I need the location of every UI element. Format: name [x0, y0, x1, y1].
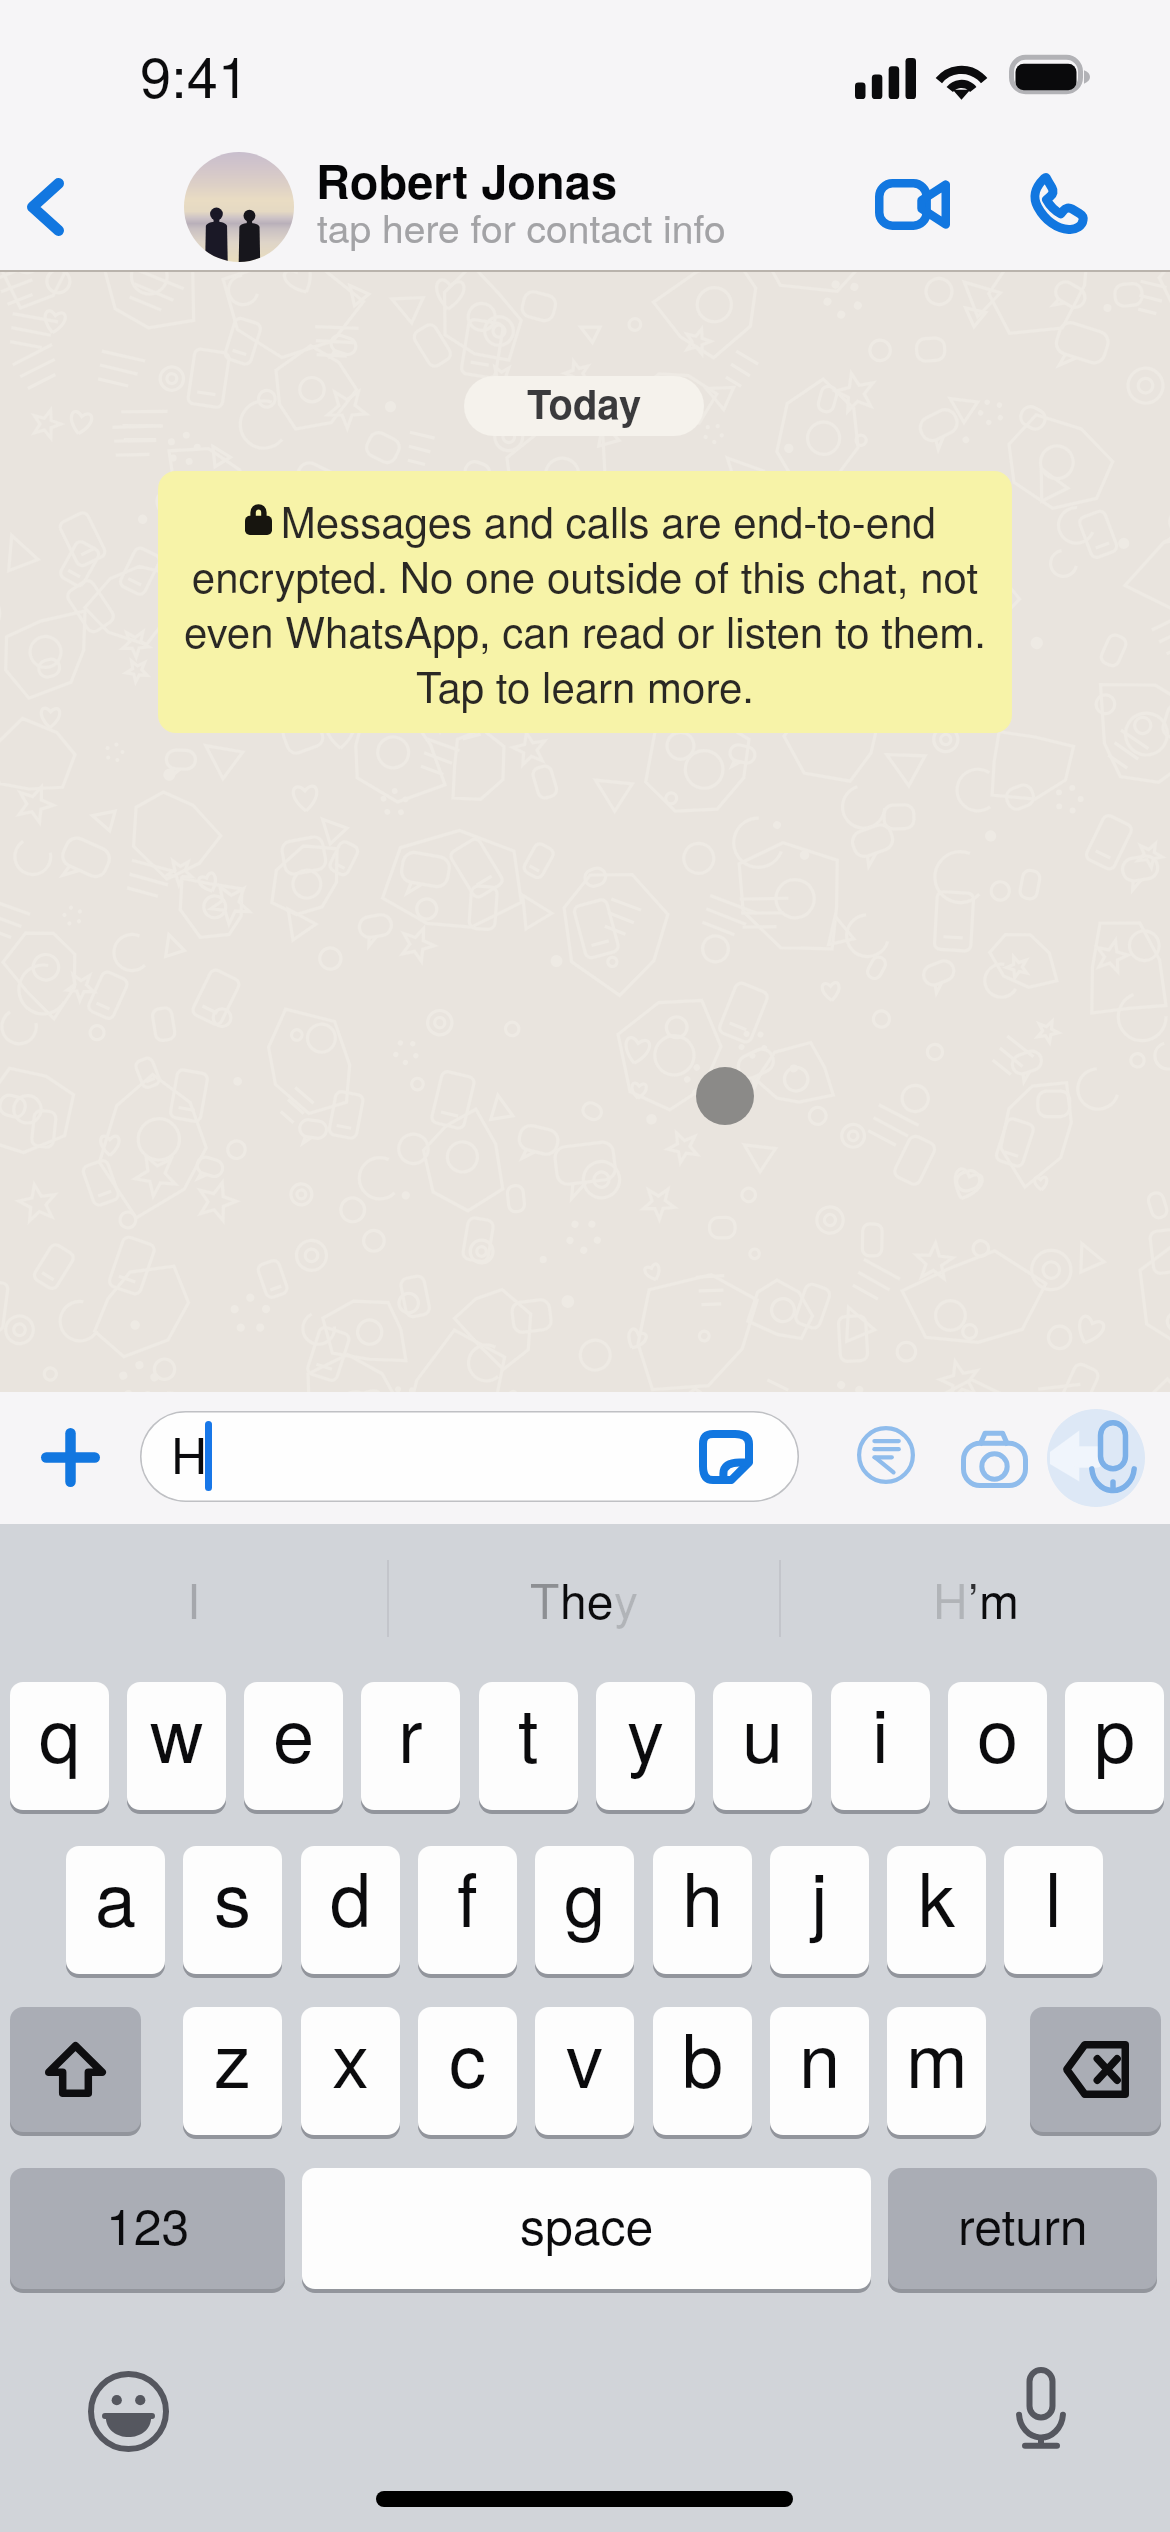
staticText: e — [273, 1682, 315, 1784]
button[interactable]: Stickers — [691, 1422, 761, 1492]
button[interactable]: n — [770, 2007, 869, 2135]
staticText: z — [214, 2007, 251, 2109]
staticText: he — [560, 1564, 614, 1633]
button[interactable]: p — [1065, 1682, 1164, 1810]
staticText: h — [682, 1846, 724, 1948]
staticText: f — [457, 1846, 478, 1948]
button[interactable]: r — [361, 1682, 460, 1810]
button[interactable]: Backspace — [1030, 2007, 1161, 2132]
staticText: Messages and calls are end-to-end encryp… — [182, 490, 988, 715]
staticText: H — [171, 1417, 208, 1489]
staticText: tap here for contact info — [317, 198, 726, 254]
staticText: space — [520, 2188, 654, 2260]
button[interactable]: u — [713, 1682, 812, 1810]
button[interactable]: c — [418, 2007, 517, 2135]
button[interactable]: h — [653, 1846, 752, 1974]
staticText: w — [150, 1682, 204, 1784]
button[interactable]: d — [301, 1846, 400, 1974]
staticText: s — [214, 1846, 251, 1948]
staticText: k — [918, 1846, 955, 1948]
button[interactable]: Robert Jonas — [316, 144, 736, 254]
button[interactable]: Voice message — [1047, 1409, 1145, 1507]
button[interactable]: Shift — [10, 2007, 141, 2132]
staticText: T — [530, 1564, 560, 1633]
button[interactable]: Contact photo — [184, 152, 294, 262]
staticText: 9:41 — [140, 34, 249, 114]
staticText: n — [799, 2007, 841, 2109]
button[interactable]: T — [389, 1528, 779, 1668]
button[interactable]: H — [140, 1411, 799, 1502]
staticText: a — [95, 1846, 137, 1948]
button[interactable]: space — [302, 2168, 871, 2289]
staticText: q — [39, 1682, 81, 1784]
staticText: i — [872, 1682, 889, 1784]
button[interactable]: z — [183, 2007, 282, 2135]
staticText: v — [566, 2007, 603, 2109]
staticText: j — [811, 1846, 828, 1948]
button[interactable]: Camera — [944, 1408, 1044, 1508]
staticText: l — [1045, 1846, 1062, 1948]
button[interactable]: Messages and calls are end-to-end encryp… — [158, 471, 1012, 733]
staticText: o — [977, 1682, 1019, 1784]
staticText: m — [979, 1564, 1019, 1633]
button[interactable]: m — [887, 2007, 986, 2135]
button[interactable]: Emoji keyboard — [68, 2351, 188, 2471]
button[interactable]: g — [535, 1846, 634, 1974]
staticText: m — [906, 2007, 968, 2109]
staticText: Today — [527, 376, 642, 431]
staticText: H — [933, 1564, 968, 1633]
button[interactable]: a — [66, 1846, 165, 1974]
staticText: u — [742, 1682, 784, 1784]
button[interactable]: q — [10, 1682, 109, 1810]
button[interactable]: 123 — [10, 2168, 285, 2289]
button[interactable]: Dictation — [981, 2348, 1101, 2468]
staticText: return — [958, 2188, 1088, 2260]
button[interactable]: k — [887, 1846, 986, 1974]
button[interactable]: i — [831, 1682, 930, 1810]
button[interactable]: Attach — [18, 1405, 122, 1509]
staticText: g — [564, 1846, 606, 1948]
button[interactable]: b — [653, 2007, 752, 2135]
button[interactable]: f — [418, 1846, 517, 1974]
button[interactable]: Back — [0, 149, 90, 265]
staticText: y — [627, 1682, 664, 1784]
button[interactable]: o — [948, 1682, 1047, 1810]
staticText: p — [1094, 1682, 1136, 1784]
button[interactable]: Today — [464, 376, 704, 436]
button[interactable]: j — [770, 1846, 869, 1974]
button[interactable]: H — [781, 1528, 1170, 1668]
staticText: 123 — [106, 2188, 190, 2260]
staticText: b — [682, 2007, 724, 2109]
button[interactable]: Payments — [836, 1405, 936, 1505]
staticText: r — [398, 1682, 423, 1784]
button[interactable]: t — [479, 1682, 578, 1810]
staticText: c — [449, 2007, 486, 2109]
button[interactable]: Video call — [854, 146, 970, 262]
button[interactable]: y — [596, 1682, 695, 1810]
staticText: I — [187, 1564, 201, 1633]
staticText: t — [518, 1682, 539, 1784]
staticText: x — [332, 2007, 369, 2109]
button[interactable]: x — [301, 2007, 400, 2135]
staticText: Robert Jonas — [316, 146, 618, 213]
staticText: y — [614, 1564, 639, 1633]
button[interactable]: e — [244, 1682, 343, 1810]
button[interactable]: return — [888, 2168, 1157, 2289]
button[interactable]: l — [1004, 1846, 1103, 1974]
staticText: ’ — [968, 1564, 979, 1633]
staticText: d — [330, 1846, 372, 1948]
button[interactable]: s — [183, 1846, 282, 1974]
button[interactable]: w — [127, 1682, 226, 1810]
button[interactable]: v — [535, 2007, 634, 2135]
button[interactable]: Voice call — [999, 146, 1115, 262]
